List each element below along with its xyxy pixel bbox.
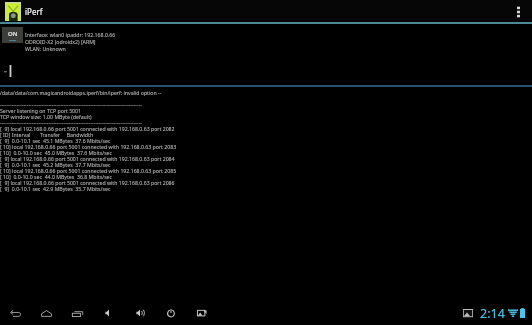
staticText: ODROID-X2 (odroidx2) [ARM]	[25, 38, 96, 45]
button[interactable]: Command arguments	[0, 48, 532, 87]
staticText: 2:14	[480, 305, 505, 322]
button[interactable]: Volume down	[97, 301, 120, 325]
staticText: ON	[8, 30, 18, 38]
button[interactable]: Back	[4, 301, 27, 325]
button[interactable]: Status	[463, 301, 525, 325]
staticText: /data/data/com.magicandroidapps.iperf/bi…	[0, 89, 177, 193]
button[interactable]: Screenshot	[190, 301, 213, 325]
button[interactable]: ON	[2, 27, 23, 43]
button[interactable]: Power	[159, 301, 182, 325]
staticText: Interface: wlan0 ipaddr: 192.168.0.66	[25, 31, 116, 38]
button[interactable]: Volume up	[128, 301, 151, 325]
button[interactable]: Home	[35, 301, 58, 325]
button[interactable]: Recent apps	[66, 301, 89, 325]
staticText: WLAN: Unknown	[25, 45, 66, 52]
staticText: iPerf	[25, 6, 43, 17]
button[interactable]: More options	[507, 0, 529, 22]
